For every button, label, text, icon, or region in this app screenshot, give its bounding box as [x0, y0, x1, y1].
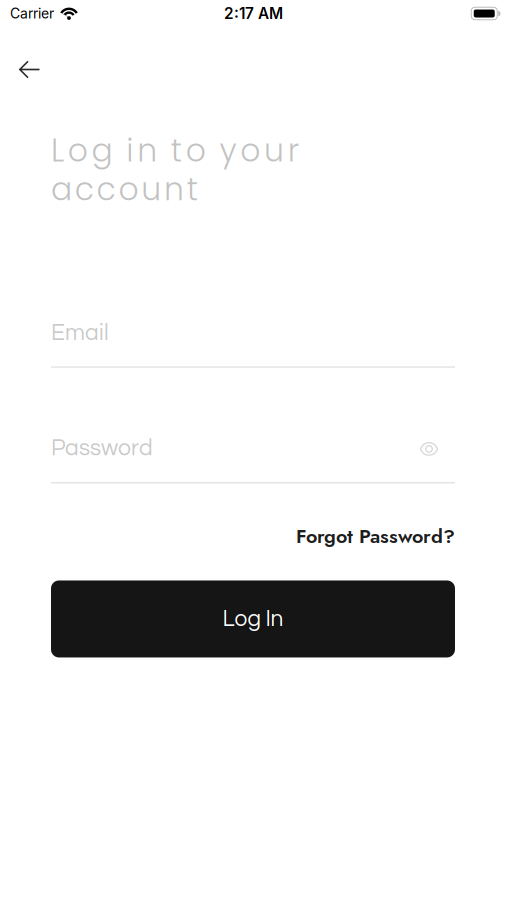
staticText: c [75, 167, 94, 211]
staticText: g [92, 128, 113, 173]
staticText: c [97, 167, 116, 211]
staticText: Password [51, 436, 153, 460]
staticText: o [240, 128, 260, 173]
staticText: r [288, 128, 299, 173]
staticText: t [171, 128, 182, 173]
staticText: o [186, 128, 206, 173]
staticText: y [219, 128, 236, 173]
staticText: Email [51, 321, 109, 345]
staticText: u [141, 167, 161, 211]
staticText: o [118, 167, 138, 211]
button[interactable]: Back [0, 27, 40, 78]
staticText: n [137, 128, 157, 173]
staticText: a [51, 167, 72, 211]
staticText: Forgot Password? [296, 522, 455, 550]
staticText: i [126, 128, 133, 173]
button[interactable]: Show password [420, 442, 455, 460]
staticText: Carrier [10, 5, 54, 22]
staticText: L [51, 128, 64, 173]
button[interactable]: Log In [51, 580, 455, 657]
staticText: t [187, 167, 198, 211]
staticText: n [164, 167, 184, 211]
staticText: Log In [222, 607, 283, 631]
button[interactable]: Forgot Password? [296, 522, 455, 550]
staticText: u [264, 128, 284, 173]
staticText: 2:17 AM [224, 4, 283, 23]
staticText: o [68, 128, 88, 173]
